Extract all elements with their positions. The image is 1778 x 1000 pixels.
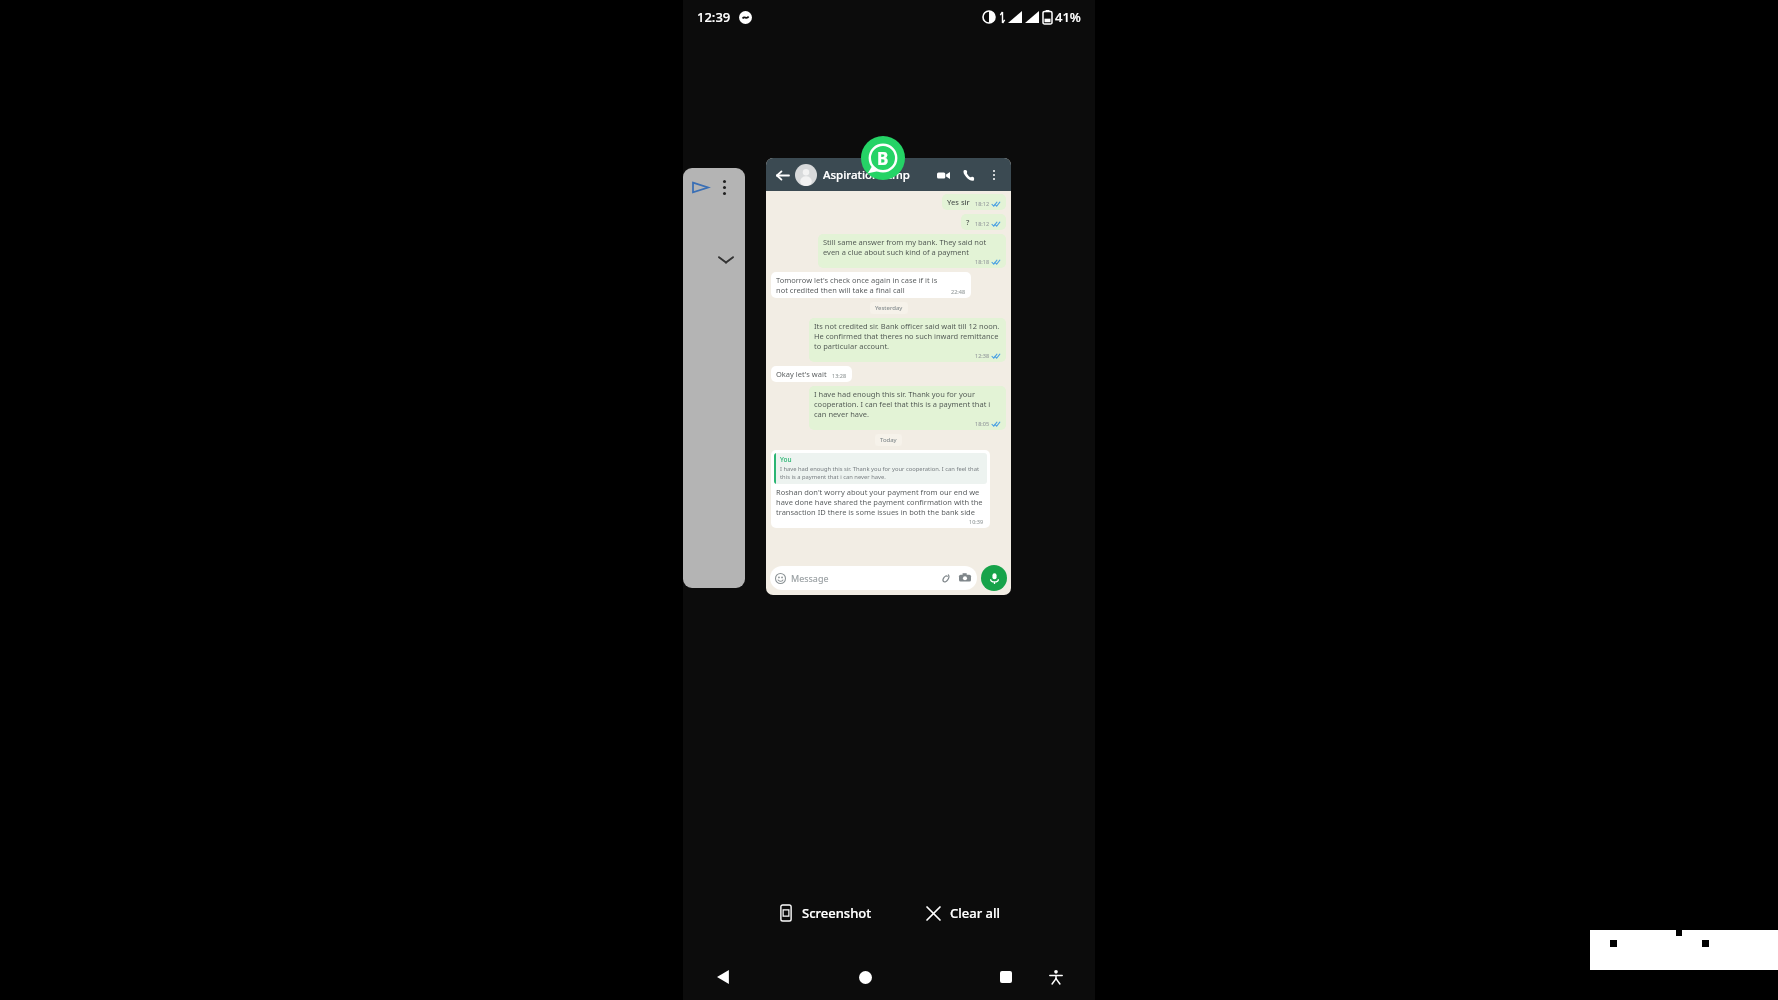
button[interactable]: You: [771, 450, 990, 528]
staticText: Clear all: [950, 904, 1000, 922]
button[interactable]: Its not credited sir. Bank officer said …: [809, 318, 1006, 362]
staticText: ?: [966, 217, 970, 227]
button[interactable]: Tomorrow let's check once again in case …: [771, 272, 971, 298]
staticText: I have had enough this sir. Thank you fo…: [780, 465, 984, 481]
staticText: 10:39: [969, 518, 984, 525]
staticText: 18:05: [975, 420, 990, 427]
staticText: 13:28: [832, 372, 847, 379]
button[interactable]: Clear all: [916, 898, 1010, 928]
button[interactable]: Back: [766, 158, 1011, 595]
staticText: Message: [791, 572, 829, 584]
button[interactable]: Still same answer from my bank. They sai…: [818, 234, 1006, 268]
button[interactable]: Attach: [938, 571, 952, 585]
staticText: 41%: [1055, 8, 1081, 26]
staticText: 12:39: [697, 8, 731, 26]
button[interactable]: ?: [961, 214, 1006, 230]
button[interactable]: Okay let's wait: [771, 366, 852, 382]
staticText: 18:12: [975, 200, 990, 207]
staticText: Roshan don't worry about your payment fr…: [776, 487, 985, 517]
staticText: Yes sir: [947, 197, 970, 207]
button[interactable]: [683, 168, 745, 588]
button[interactable]: Message: [770, 566, 977, 590]
staticText: Aspirations Imp: [823, 167, 910, 183]
button[interactable]: Home: [848, 960, 882, 994]
staticText: Its not credited sir. Bank officer said …: [814, 321, 1001, 351]
staticText: 12:38: [975, 352, 990, 359]
staticText: You: [780, 455, 792, 464]
button[interactable]: Video call: [932, 164, 954, 186]
button[interactable]: More options: [983, 164, 1005, 186]
staticText: Today: [880, 436, 897, 444]
button[interactable]: Screenshot: [768, 898, 882, 928]
button[interactable]: Accessibility: [1041, 962, 1071, 992]
button[interactable]: Recent apps: [989, 960, 1023, 994]
staticText: 18:12: [975, 220, 990, 227]
staticText: 18:18: [975, 258, 990, 265]
button[interactable]: Back: [707, 960, 741, 994]
staticText: Yesterday: [875, 304, 903, 312]
button[interactable]: Call: [958, 164, 980, 186]
staticText: 22:48: [951, 288, 966, 295]
button[interactable]: Voice message: [981, 565, 1007, 591]
button[interactable]: I have had enough this sir. Thank you fo…: [809, 386, 1006, 430]
button[interactable]: Back: [772, 165, 792, 185]
button[interactable]: Yes sir: [942, 194, 1006, 210]
staticText: Screenshot: [802, 904, 872, 922]
staticText: Tomorrow let's check once again in case …: [776, 275, 947, 295]
staticText: B: [877, 147, 889, 170]
button[interactable]: Camera: [958, 571, 972, 585]
staticText: I have had enough this sir. Thank you fo…: [814, 389, 1001, 419]
staticText: Still same answer from my bank. They sai…: [823, 237, 1001, 257]
staticText: Okay let's wait: [776, 369, 827, 379]
